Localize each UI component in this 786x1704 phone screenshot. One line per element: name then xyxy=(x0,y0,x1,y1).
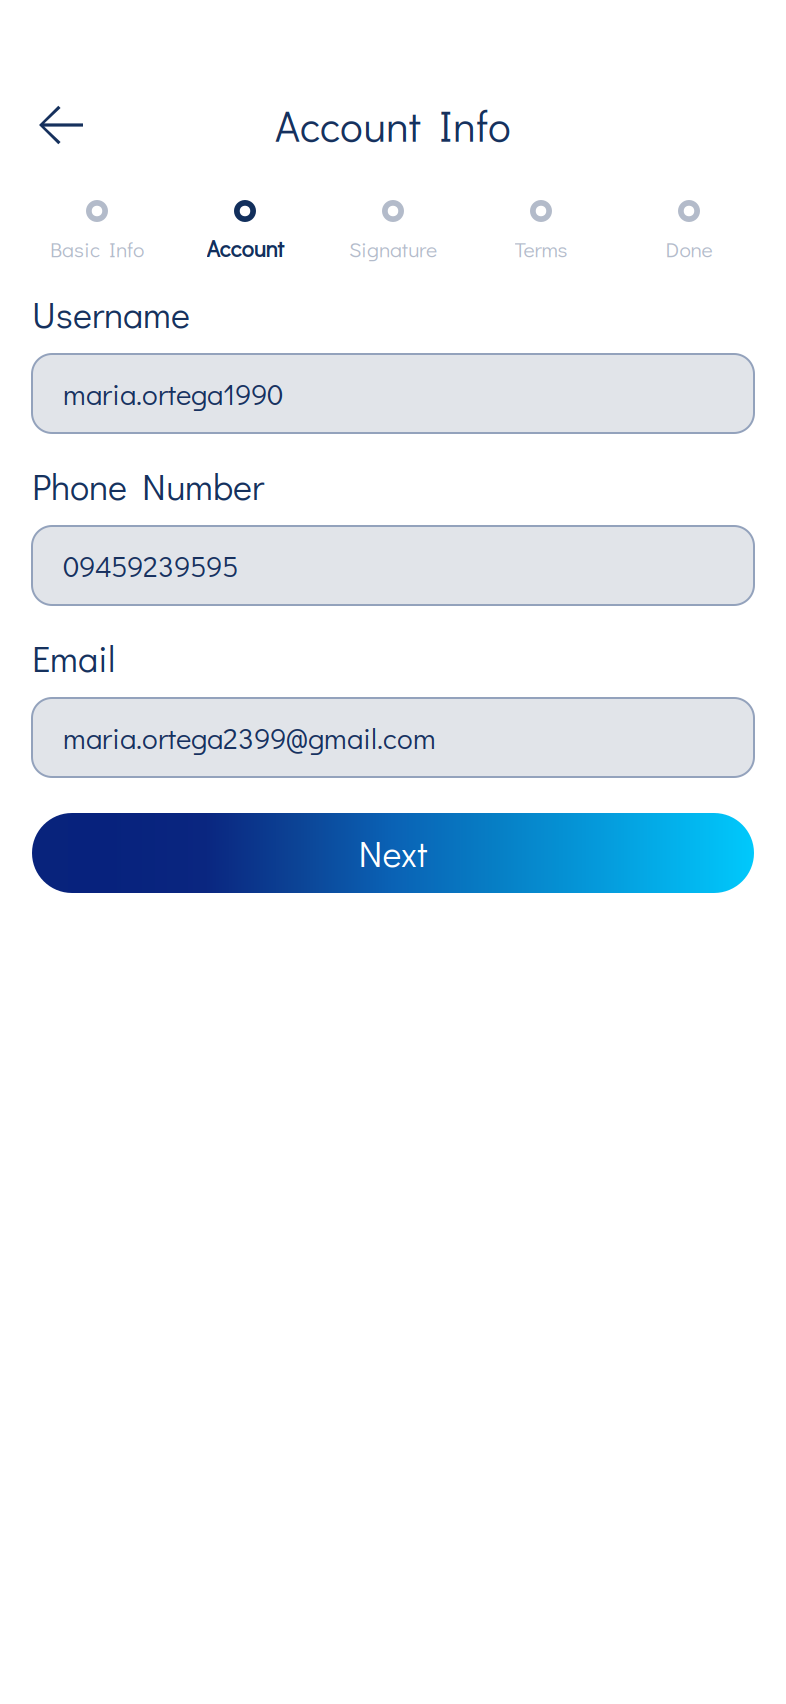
staticText: 09459239595 xyxy=(63,546,238,585)
button[interactable]: Done xyxy=(615,200,763,263)
staticText: Phone Number xyxy=(32,462,264,510)
button[interactable]: Terms xyxy=(467,200,615,263)
button[interactable]: 09459239595 xyxy=(32,526,754,605)
staticText: Account Info xyxy=(275,97,511,153)
button[interactable]: Signature xyxy=(319,200,467,263)
staticText: Done xyxy=(665,235,712,263)
staticText: Email xyxy=(32,634,115,682)
staticText: Terms xyxy=(514,235,567,263)
staticText: maria.ortega1990 xyxy=(63,374,283,413)
button[interactable]: Next xyxy=(32,813,754,893)
button[interactable]: Basic Info xyxy=(23,200,171,263)
staticText: Account xyxy=(206,233,283,263)
staticText: Basic Info xyxy=(50,235,144,263)
button[interactable]: Account xyxy=(171,200,319,263)
button[interactable]: Back xyxy=(32,102,92,148)
staticText: maria.ortega2399@gmail.com xyxy=(63,718,436,757)
staticText: Username xyxy=(32,290,190,338)
button[interactable]: maria.ortega1990 xyxy=(32,354,754,433)
staticText: Next xyxy=(358,829,427,877)
button[interactable]: maria.ortega2399@gmail.com xyxy=(32,698,754,777)
staticText: Signature xyxy=(349,235,437,263)
